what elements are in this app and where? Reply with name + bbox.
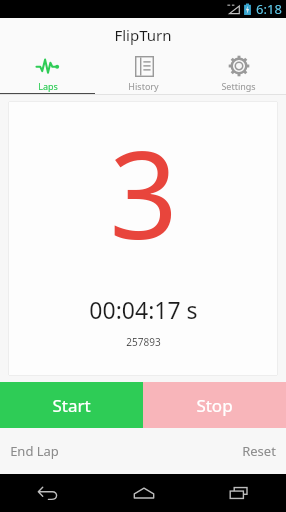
button[interactable]: Start xyxy=(0,382,143,428)
button[interactable]: Reset xyxy=(232,428,286,474)
staticText: Settings xyxy=(221,80,256,92)
staticText: End Lap xyxy=(10,442,59,460)
button[interactable]: Back xyxy=(0,474,96,512)
staticText: Stop xyxy=(196,394,233,417)
staticText: 257893 xyxy=(126,335,161,349)
button[interactable]: Settings xyxy=(191,51,286,95)
button[interactable]: Home xyxy=(96,474,191,512)
staticText: 3 xyxy=(109,111,178,274)
button[interactable]: Recent apps xyxy=(191,474,286,512)
staticText: Start xyxy=(52,394,91,417)
staticText: 6:18 xyxy=(256,0,282,18)
staticText: History xyxy=(128,80,159,92)
button[interactable]: End Lap xyxy=(0,428,69,474)
staticText: FlipTurn xyxy=(114,25,172,45)
button[interactable]: Laps xyxy=(0,51,96,95)
button[interactable]: History xyxy=(96,51,191,95)
staticText: Reset xyxy=(242,442,276,460)
button[interactable]: Stop xyxy=(143,382,286,428)
staticText: 00:04:17 s xyxy=(89,294,198,325)
staticText: Laps xyxy=(38,80,58,92)
